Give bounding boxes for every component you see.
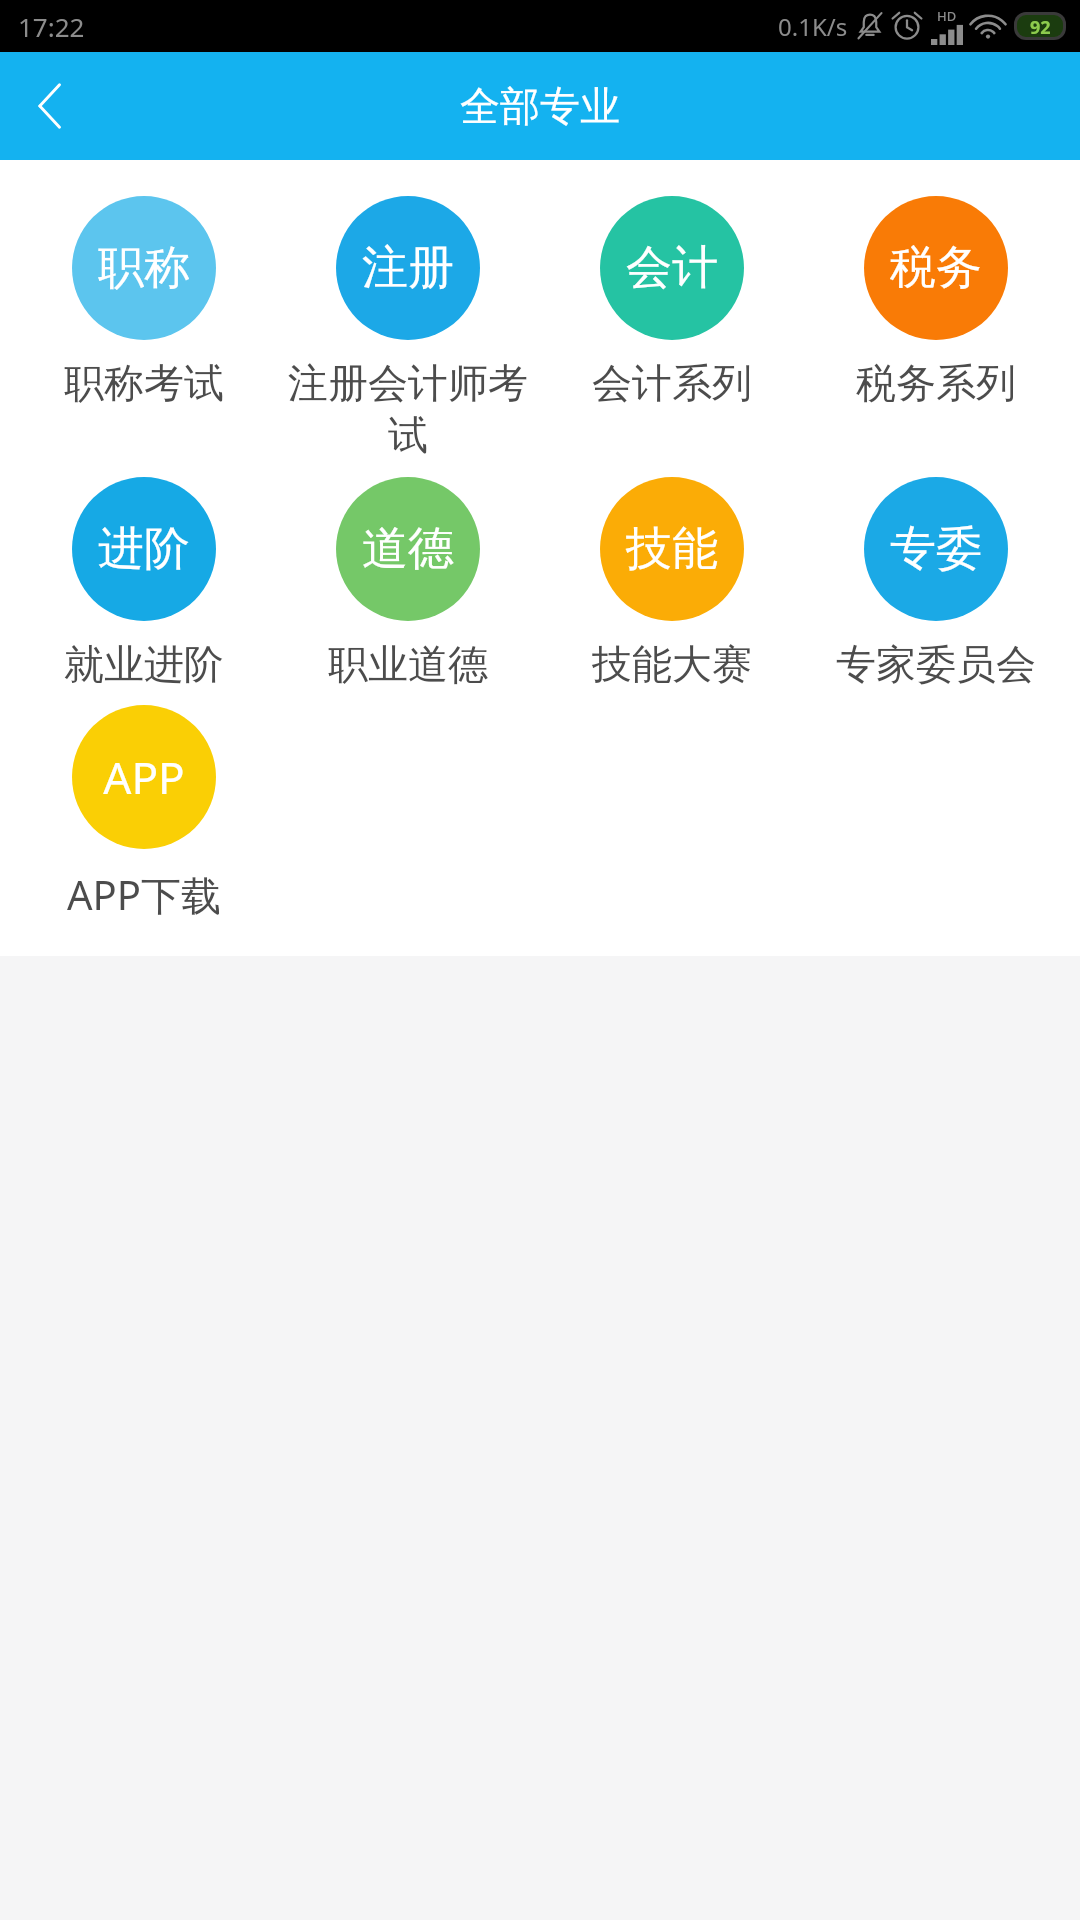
button[interactable]: APP (12, 697, 276, 930)
staticText: 专委 (890, 520, 982, 578)
button[interactable]: 技能 (540, 469, 804, 697)
staticText: APP下载 (67, 867, 221, 922)
staticText: 职称 (98, 239, 190, 297)
staticText: 17:22 (18, 9, 85, 44)
button[interactable]: Back (0, 52, 100, 160)
staticText: 会计系列 (592, 358, 752, 408)
staticText: 技能 (626, 520, 718, 578)
staticText: 会计 (626, 239, 718, 297)
staticText: 进阶 (98, 520, 190, 578)
staticText: HD (937, 7, 957, 25)
staticText: 职称考试 (64, 358, 224, 408)
staticText: 就业进阶 (64, 639, 224, 689)
staticText: 0.1K/s (778, 10, 848, 43)
staticText: 注册 (362, 239, 454, 297)
staticText: 全部专业 (460, 81, 620, 131)
staticText: 注册会计师考试 (280, 358, 536, 461)
staticText: 税务 (890, 239, 982, 297)
staticText: 职业道德 (328, 639, 488, 689)
button[interactable]: 职称 (12, 188, 276, 416)
staticText: 道德 (362, 520, 454, 578)
staticText: 92 (1030, 15, 1051, 37)
staticText: 税务系列 (856, 358, 1016, 408)
staticText: 专家委员会 (836, 639, 1036, 689)
button[interactable]: 专委 (804, 469, 1068, 697)
button[interactable]: 会计 (540, 188, 804, 416)
button[interactable]: 道德 (276, 469, 540, 697)
staticText: 技能大赛 (592, 639, 752, 689)
button[interactable]: 注册 (276, 188, 540, 469)
button[interactable]: 税务 (804, 188, 1068, 416)
staticText: APP (103, 747, 185, 807)
button[interactable]: 进阶 (12, 469, 276, 697)
